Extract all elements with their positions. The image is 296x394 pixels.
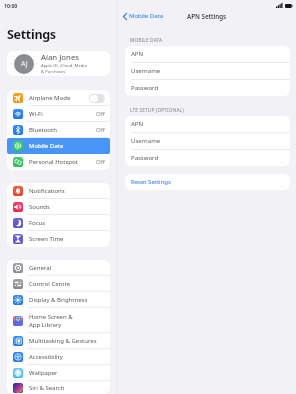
- staticText: Multitasking & Gestures: [29, 337, 97, 345]
- staticText: APN Settings: [187, 12, 227, 20]
- staticText: Off: [96, 110, 105, 118]
- staticText: Password: [131, 84, 159, 92]
- staticText: Mobile Data: [29, 142, 64, 150]
- button[interactable]: Siri & Search: [7, 381, 110, 394]
- button[interactable]: Airplane Mode toggle: [89, 94, 105, 103]
- staticText: Wallpaper: [29, 369, 58, 377]
- staticText: App Library: [29, 321, 62, 329]
- staticText: Notifications: [29, 187, 65, 195]
- staticText: Display & Brightness: [29, 296, 88, 304]
- staticText: Reset Settings: [131, 178, 171, 186]
- staticText: Airplane Mode: [29, 94, 71, 102]
- button[interactable]: Accessibility: [7, 349, 110, 365]
- staticText: Apple ID, iCloud, Media: [41, 63, 87, 69]
- button[interactable]: Wi-Fi: [7, 106, 110, 122]
- staticText: Off: [96, 126, 105, 134]
- button[interactable]: Reset Settings: [125, 174, 290, 190]
- button[interactable]: Password: [125, 80, 290, 96]
- button[interactable]: Mobile Data: [7, 138, 110, 154]
- staticText: AJ: [21, 59, 28, 69]
- button[interactable]: Sounds: [7, 199, 110, 215]
- staticText: Personal Hotspot: [29, 158, 78, 166]
- staticText: Mobile Data: [129, 12, 164, 20]
- staticText: & Purchases: [41, 69, 66, 75]
- button[interactable]: APN: [125, 116, 290, 132]
- button[interactable]: Personal Hotspot: [7, 154, 110, 170]
- staticText: Accessibility: [29, 353, 63, 361]
- button[interactable]: Notifications: [7, 183, 110, 199]
- button[interactable]: Airplane Mode: [7, 90, 110, 106]
- staticText: Home Screen &: [29, 313, 73, 321]
- staticText: Wi-Fi: [29, 110, 43, 118]
- button[interactable]: General: [7, 260, 110, 276]
- button[interactable]: Screen Time: [7, 231, 110, 247]
- staticText: Off: [96, 158, 105, 166]
- staticText: Username: [131, 137, 161, 145]
- button[interactable]: Display & Brightness: [7, 292, 110, 308]
- staticText: Control Centre: [29, 280, 71, 288]
- staticText: Settings: [7, 26, 56, 42]
- button[interactable]: Focus: [7, 215, 110, 231]
- staticText: LTE SETUP (OPTIONAL): [130, 107, 184, 114]
- staticText: APN: [131, 50, 144, 58]
- staticText: 10:00: [4, 2, 18, 9]
- button[interactable]: Wallpaper: [7, 365, 110, 381]
- button[interactable]: Multitasking & Gestures: [7, 333, 110, 349]
- button[interactable]: Username: [125, 63, 290, 79]
- staticText: Siri & Search: [29, 384, 65, 392]
- button[interactable]: Mobile Data: [122, 11, 165, 21]
- staticText: Screen Time: [29, 235, 64, 243]
- button[interactable]: Password: [125, 150, 290, 166]
- staticText: Bluetooth: [29, 126, 57, 134]
- staticText: Username: [131, 67, 161, 75]
- button[interactable]: AJ: [7, 51, 110, 76]
- button[interactable]: Username: [125, 133, 290, 149]
- button[interactable]: Bluetooth: [7, 122, 110, 138]
- staticText: APN: [131, 120, 144, 128]
- staticText: MOBILE DATA: [130, 37, 163, 44]
- staticText: Focus: [29, 219, 46, 227]
- button[interactable]: Home Screen &: [7, 308, 110, 333]
- button[interactable]: APN: [125, 46, 290, 62]
- button[interactable]: Control Centre: [7, 276, 110, 292]
- staticText: Alan Jones: [41, 52, 80, 63]
- staticText: Sounds: [29, 203, 50, 211]
- staticText: Password: [131, 154, 159, 162]
- staticText: General: [29, 264, 52, 272]
